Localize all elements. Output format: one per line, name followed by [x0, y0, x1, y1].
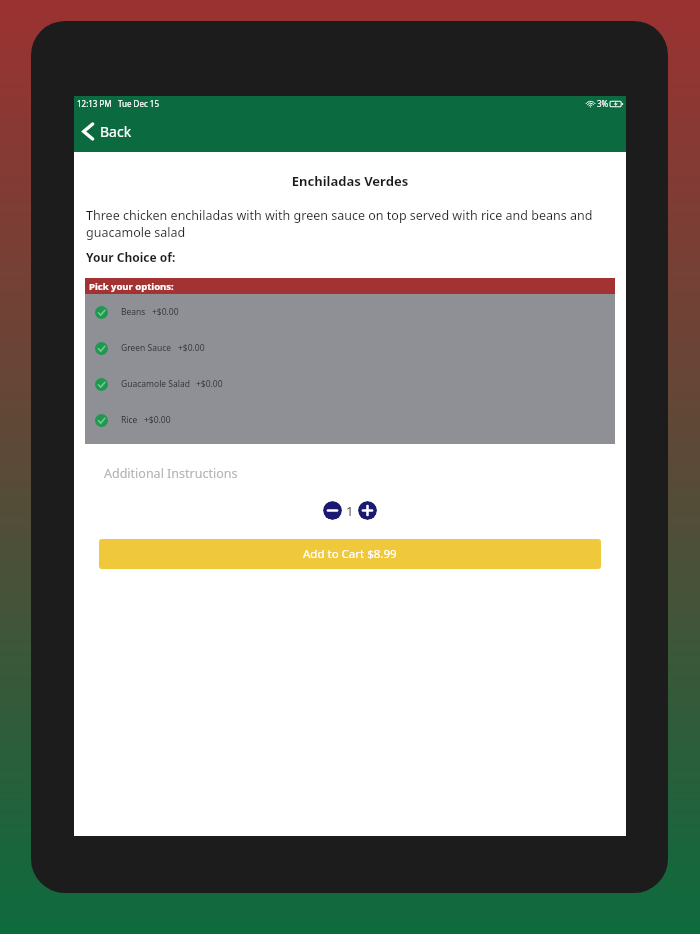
button[interactable]: Additional Instructions: [104, 465, 238, 482]
button[interactable]: Back: [74, 116, 140, 147]
staticText: Green Sauce: [121, 342, 172, 354]
staticText: +$0.00: [196, 378, 223, 390]
staticText: 12:13 PM: [77, 98, 112, 109]
staticText: Three chicken enchiladas with with green…: [86, 207, 612, 241]
staticText: Rice: [121, 414, 138, 426]
button[interactable]: Beans: [85, 294, 615, 330]
staticText: Guacamole Salad: [121, 378, 190, 390]
button[interactable]: Rice: [85, 402, 615, 438]
staticText: +$0.00: [178, 342, 205, 354]
button[interactable]: Add to Cart $8.99: [99, 539, 601, 569]
button[interactable]: Increase quantity: [358, 501, 377, 520]
button[interactable]: Green Sauce: [85, 330, 615, 366]
staticText: Enchiladas Verdes: [74, 172, 626, 190]
staticText: +$0.00: [144, 414, 171, 426]
staticText: 1: [346, 502, 354, 520]
staticText: Tue Dec 15: [118, 98, 160, 109]
staticText: Back: [100, 122, 132, 141]
button[interactable]: Decrease quantity: [323, 501, 342, 520]
button[interactable]: Guacamole Salad: [85, 366, 615, 402]
staticText: Add to Cart $8.99: [303, 546, 397, 562]
staticText: +$0.00: [152, 306, 179, 318]
staticText: Your Choice of:: [86, 249, 176, 265]
staticText: 3%: [597, 98, 609, 109]
staticText: Beans: [121, 306, 146, 318]
staticText: Pick your options:: [89, 280, 174, 293]
